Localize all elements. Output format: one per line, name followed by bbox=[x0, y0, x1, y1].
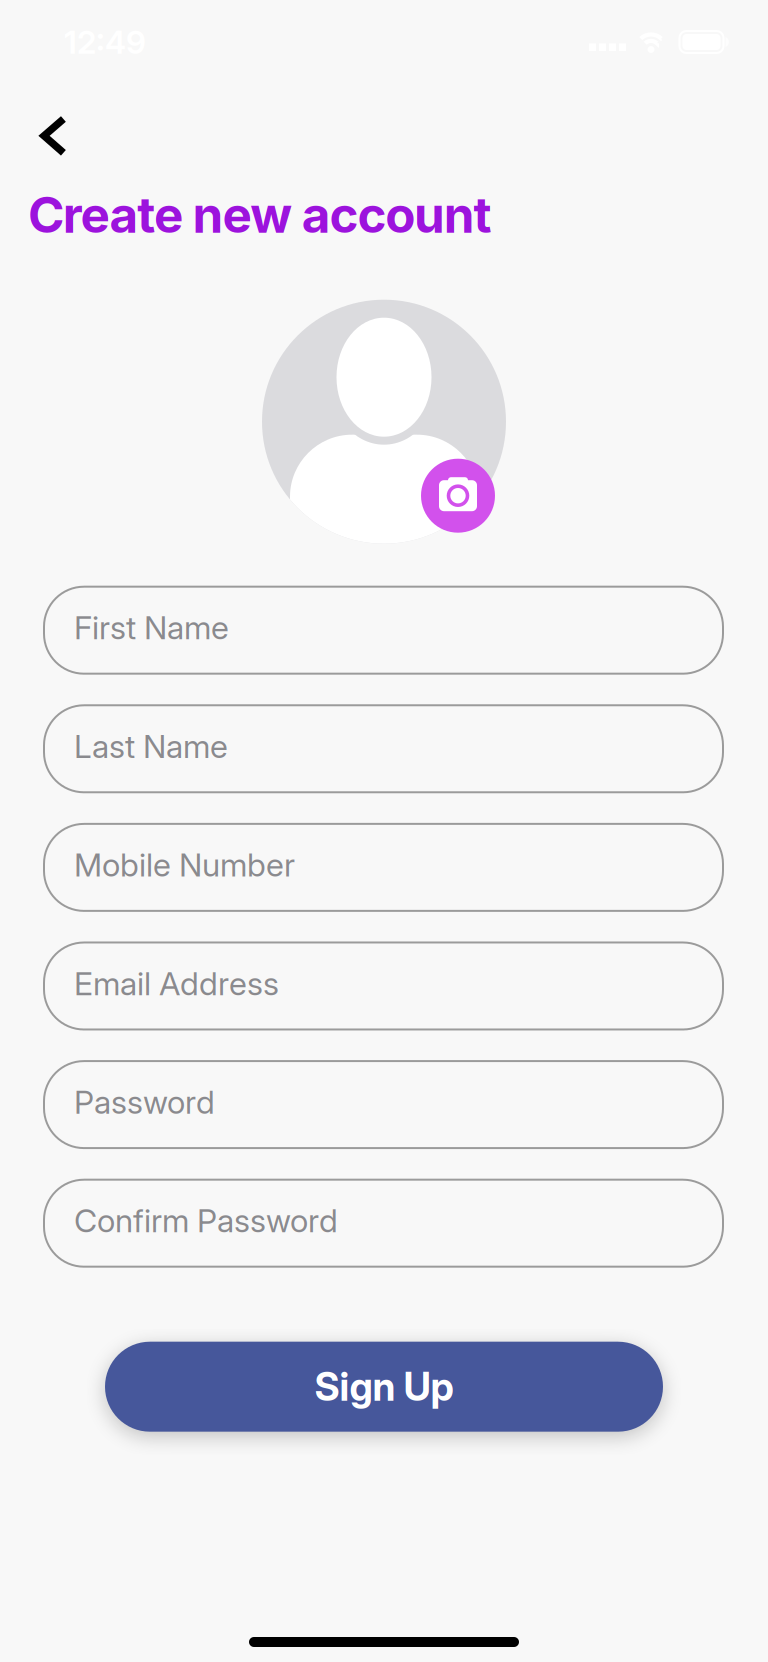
staticText: Last Name bbox=[74, 727, 228, 766]
button[interactable] bbox=[40, 116, 67, 156]
button[interactable]: Password bbox=[44, 1061, 723, 1148]
button[interactable]: Mobile Number bbox=[44, 824, 723, 911]
button[interactable]: Email Address bbox=[44, 942, 723, 1029]
staticText: Sign Up bbox=[314, 1363, 453, 1410]
button[interactable]: Confirm Password bbox=[44, 1180, 723, 1267]
staticText: First Name bbox=[74, 608, 229, 647]
staticText: Email Address bbox=[74, 964, 279, 1003]
button[interactable]: First Name bbox=[44, 587, 723, 674]
button[interactable]: Sign Up bbox=[105, 1342, 663, 1432]
staticText: Password bbox=[74, 1083, 215, 1121]
staticText: Confirm Password bbox=[74, 1201, 338, 1240]
button[interactable]: Last Name bbox=[44, 705, 723, 792]
button[interactable] bbox=[421, 459, 495, 533]
staticText: Create new account bbox=[28, 185, 492, 245]
staticText: Mobile Number bbox=[74, 845, 295, 884]
